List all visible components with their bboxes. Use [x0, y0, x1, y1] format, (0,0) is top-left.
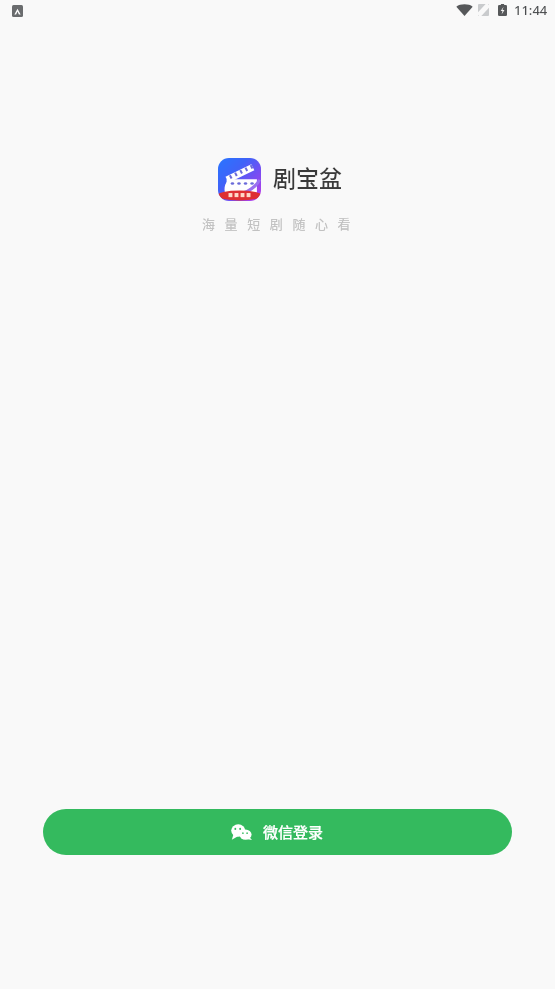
- staticText: 海量短剧随心看: [202, 214, 361, 233]
- staticText: 11:44: [514, 1, 548, 19]
- staticText: 微信登录: [263, 821, 324, 843]
- staticText: 剧宝盆: [273, 160, 342, 193]
- button[interactable]: 微信登录: [43, 809, 512, 855]
